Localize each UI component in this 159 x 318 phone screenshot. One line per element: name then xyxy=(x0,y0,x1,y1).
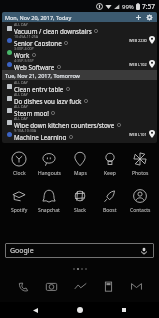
staticText: Do dishes you lazy fuck xyxy=(14,97,82,104)
button[interactable]: 3:00P-4:00P xyxy=(2,46,157,58)
staticText: 99% xyxy=(122,3,134,11)
staticText: Maps xyxy=(74,170,87,177)
staticText: 3:00P-4:00P xyxy=(14,46,34,51)
button[interactable]: ALL DAY xyxy=(2,22,157,34)
button[interactable]: ALL DAY xyxy=(2,80,157,92)
button[interactable]: Tue, Nov 21, 2017, Tomorrow xyxy=(2,70,157,80)
staticText: Boost xyxy=(103,207,117,214)
staticText: Mon, Nov 20, 2017, Today xyxy=(5,14,72,21)
staticText: ALL DAY xyxy=(14,80,28,85)
staticText: Google xyxy=(10,246,34,256)
button[interactable]: Snapchat xyxy=(35,187,63,215)
button[interactable]: Phone xyxy=(13,276,33,296)
staticText: 4:35P-5:55P xyxy=(14,58,34,63)
button[interactable]: Clock xyxy=(5,150,33,178)
button[interactable]: Calculator xyxy=(98,276,118,296)
button[interactable]: ALL DAY xyxy=(2,104,157,116)
staticText: Machine Learning xyxy=(14,133,67,140)
button[interactable]: Hangouts xyxy=(35,150,63,178)
button[interactable]: Add event xyxy=(134,13,142,21)
button[interactable]: ALL DAY xyxy=(2,92,157,104)
staticText: Clean entry table xyxy=(14,85,64,92)
staticText: Work xyxy=(14,51,30,58)
button[interactable]: Camera xyxy=(41,276,61,296)
staticText: Vacuum / clean downstairs xyxy=(14,27,92,34)
staticText: Slack xyxy=(74,207,86,214)
button[interactable]: Photos xyxy=(126,150,154,178)
other: Location xyxy=(149,130,155,138)
staticText: 7:57 xyxy=(142,2,155,11)
staticText: ALL DAY xyxy=(14,116,28,121)
button[interactable]: Keep xyxy=(96,150,124,178)
button[interactable]: 10:45A-11:25A xyxy=(2,34,157,46)
staticText: Snapchat xyxy=(38,207,60,214)
button[interactable]: Boost xyxy=(96,187,124,215)
staticText: Tue, Nov 21, 2017, Tomorrow xyxy=(5,72,80,79)
staticText: Steam mop! xyxy=(14,109,49,116)
staticText: Spotify xyxy=(11,207,28,214)
staticText: WEB L101 xyxy=(129,132,147,137)
button[interactable]: Settings xyxy=(145,13,154,22)
button[interactable]: Recent apps xyxy=(115,302,133,318)
staticText: WEB L102 xyxy=(129,62,147,67)
button[interactable]: Slack xyxy=(66,187,94,215)
button[interactable]: Spotify xyxy=(5,187,33,215)
button[interactable]: Mon, Nov 20, 2017, Today xyxy=(2,12,157,22)
staticText: Keep xyxy=(104,170,116,177)
button[interactable]: Google xyxy=(5,243,154,258)
staticText: WEB 2230 xyxy=(129,38,147,43)
staticText: ALL DAY xyxy=(14,22,28,27)
staticText: Photos xyxy=(132,170,149,177)
staticText: 10:45A-11:25A xyxy=(14,34,39,39)
staticText: Contacts xyxy=(130,207,151,214)
button[interactable]: Contacts xyxy=(126,187,154,215)
staticText: Wipe down kitchen counters/stove xyxy=(14,121,115,128)
button[interactable]: 4:35P-5:55P xyxy=(2,58,157,70)
button[interactable]: ALL DAY xyxy=(2,116,157,128)
button[interactable]: Stocks xyxy=(70,276,90,296)
staticText: Clock xyxy=(13,170,26,177)
button[interactable]: Maps xyxy=(66,150,94,178)
staticText: Hangouts xyxy=(38,170,61,177)
button[interactable]: Back xyxy=(26,302,44,318)
button[interactable]: Voice search xyxy=(139,246,149,256)
staticText: Web Software xyxy=(14,63,55,70)
button[interactable]: 9:10A-10:30A xyxy=(2,128,157,140)
button[interactable]: Home xyxy=(71,302,89,318)
button[interactable]: Gmail xyxy=(126,276,146,296)
staticText: ALL DAY xyxy=(14,104,28,109)
other: Location xyxy=(149,36,155,44)
staticText: Senior Capstone xyxy=(14,39,62,46)
other: Location xyxy=(149,60,155,68)
staticText: ALL DAY xyxy=(14,92,28,97)
staticText: 9:10A-10:30A xyxy=(14,128,37,133)
